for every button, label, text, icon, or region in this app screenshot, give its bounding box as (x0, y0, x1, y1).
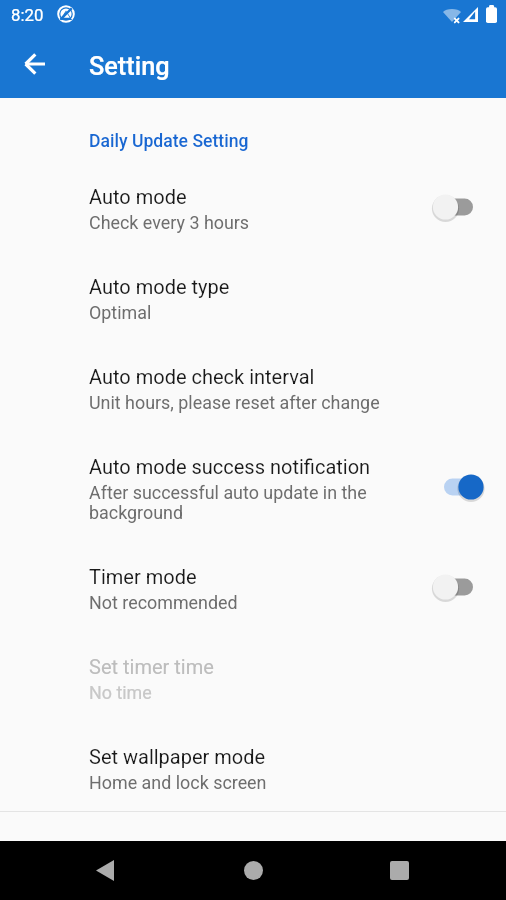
button[interactable]: Toggle (432, 569, 482, 605)
staticText: Set timer time (89, 655, 214, 678)
staticText: 8:20 (11, 5, 44, 25)
button[interactable]: Back (75, 841, 135, 900)
staticText: Auto mode check interval (89, 365, 315, 388)
button[interactable]: Auto mode success notification (0, 434, 506, 544)
button[interactable]: Auto mode type (0, 254, 506, 344)
button[interactable]: Auto mode check interval (0, 344, 506, 434)
staticText: Daily Update Setting (89, 131, 249, 152)
staticText: Home and lock screen (89, 772, 267, 790)
button[interactable]: Home (223, 841, 283, 900)
button[interactable]: Set timer time (0, 634, 506, 724)
staticText: Unit hours, please reset after change (89, 392, 380, 413)
staticText: No time (89, 682, 152, 703)
button[interactable]: Auto mode (0, 164, 506, 254)
staticText: Timer mode (89, 565, 197, 588)
button[interactable]: Toggle (432, 189, 482, 225)
staticText: Check every 3 hours (89, 212, 250, 233)
staticText: Set wallpaper mode (89, 745, 266, 768)
staticText: Not recommended (89, 592, 238, 613)
staticText: Setting (89, 52, 170, 82)
button[interactable]: Recent apps (369, 841, 429, 900)
staticText: Auto mode type (89, 275, 230, 298)
button[interactable]: Set wallpaper mode (0, 724, 506, 811)
staticText: Optimal (89, 302, 152, 323)
staticText: Auto mode (89, 185, 187, 208)
button[interactable]: Timer mode (0, 544, 506, 634)
button[interactable]: Back (10, 40, 58, 88)
staticText: After successful auto update in the back… (89, 482, 367, 523)
button[interactable]: Toggle (432, 469, 482, 505)
staticText: Auto mode success notification (89, 455, 371, 478)
